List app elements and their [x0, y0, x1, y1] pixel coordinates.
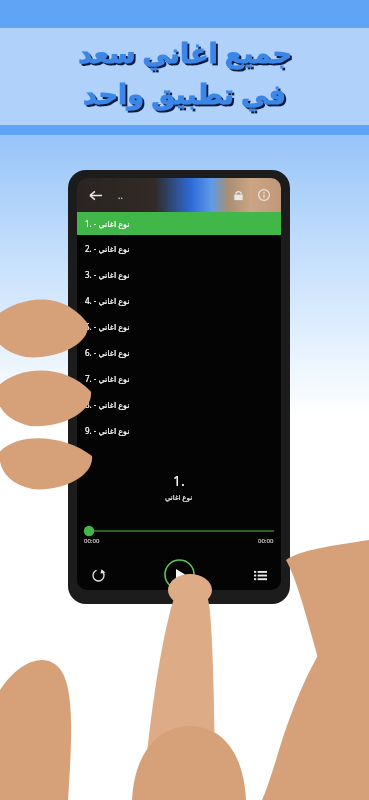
button[interactable]: 5. - نوع اغاني: [77, 313, 281, 339]
button[interactable]: Repeat: [86, 563, 110, 587]
button[interactable]: 4. - نوع اغاني: [77, 287, 281, 313]
staticText: 7. - نوع اغاني: [85, 373, 130, 384]
button[interactable]: Back: [84, 184, 106, 206]
button[interactable]: 6. - نوع اغاني: [77, 339, 281, 365]
staticText: ..: [118, 189, 123, 201]
button[interactable]: 2. - نوع اغاني: [77, 235, 281, 261]
staticText: 9. - نوع اغاني: [85, 425, 130, 436]
button[interactable]: Info: [254, 185, 274, 205]
button[interactable]: Lock: [228, 185, 248, 205]
staticText: 5. - نوع اغاني: [85, 321, 130, 332]
staticText: 1.: [173, 471, 185, 490]
staticText: 3. - نوع اغاني: [85, 269, 130, 280]
button[interactable]: Play: [164, 559, 195, 590]
button[interactable]: Playlist: [248, 563, 272, 587]
button[interactable]: 7. - نوع اغاني: [77, 365, 281, 391]
staticText: في تطبيق واحد: [83, 75, 286, 112]
button[interactable]: 3. - نوع اغاني: [77, 261, 281, 287]
staticText: نوع اغاني: [165, 493, 193, 503]
staticText: في تطبيق واحد: [85, 77, 288, 114]
staticText: 4. - نوع اغاني: [85, 295, 130, 306]
button[interactable]: 8. - نوع اغاني: [77, 391, 281, 417]
staticText: 00:00: [84, 537, 100, 545]
staticText: 2. - نوع اغاني: [85, 243, 130, 254]
staticText: جميع اغاني سعد: [80, 36, 294, 73]
staticText: 8. - نوع اغاني: [85, 399, 130, 410]
staticText: جميع اغاني سعد: [78, 34, 292, 71]
button[interactable]: 1. - نوع اغاني: [77, 212, 281, 235]
staticText: 1. - نوع اغاني: [85, 218, 130, 229]
staticText: 6. - نوع اغاني: [85, 347, 130, 358]
button[interactable]: 9. - نوع اغاني: [77, 417, 281, 443]
staticText: 00:00: [258, 537, 274, 545]
